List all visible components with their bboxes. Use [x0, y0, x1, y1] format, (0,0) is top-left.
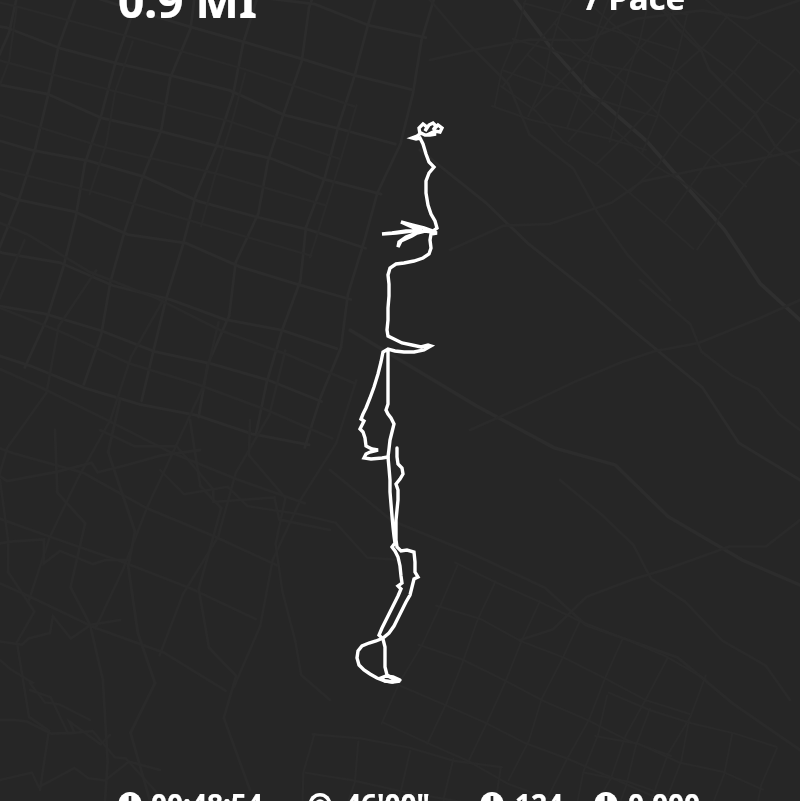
button[interactable]: Duration 00:48:54: [110, 786, 300, 801]
button[interactable]: / Pace: [570, 0, 700, 22]
button[interactable]: 0.9 MI: [100, 0, 280, 26]
button[interactable]: Heart rate 124: [470, 786, 590, 801]
button[interactable]: Elevation 0.000: [590, 786, 750, 801]
button[interactable]: Pace 46'00": [300, 786, 460, 801]
button[interactable]: Route map: [0, 30, 800, 770]
